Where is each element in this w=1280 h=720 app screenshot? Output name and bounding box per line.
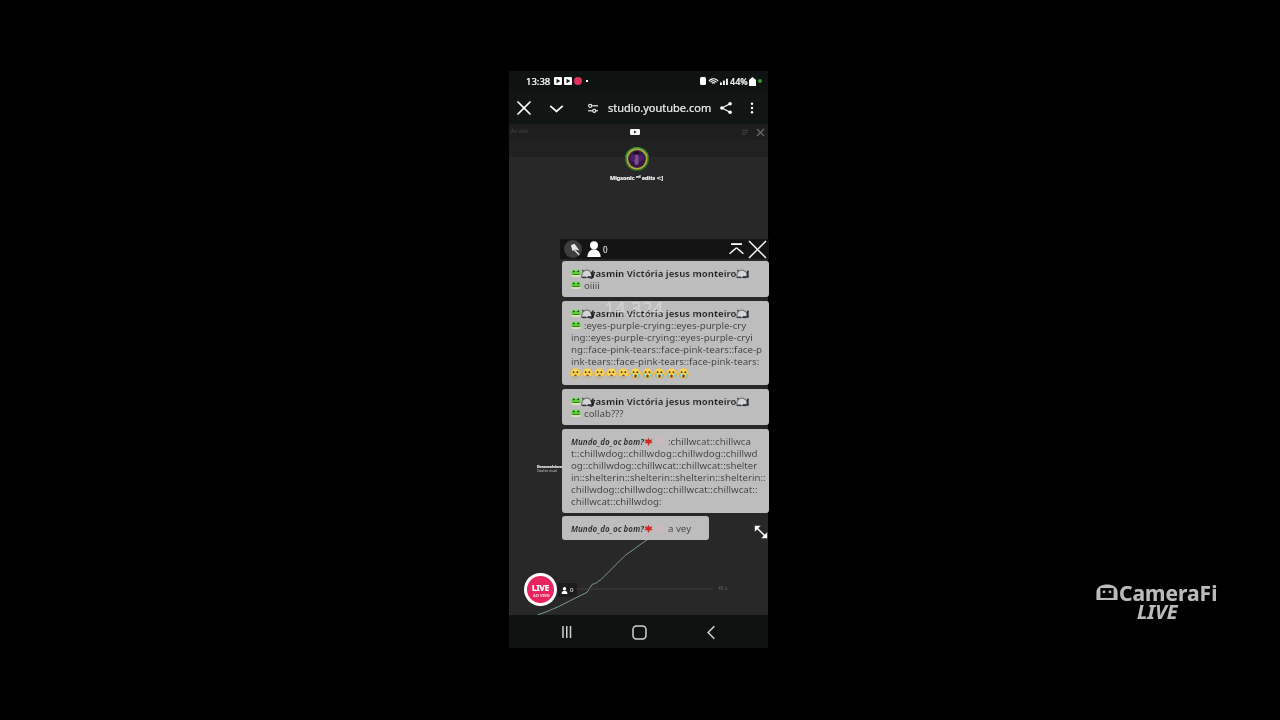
staticText: a vey [668, 522, 692, 535]
staticText: ink-tears::face-pink-tears::face-pink-te… [571, 355, 760, 367]
staticText: Migsonic ᵉᵈ edits <:] [610, 174, 664, 181]
staticText: yasmin Victória jesus monteiro [590, 395, 737, 407]
staticText: t::chillwdog::chillwdog::chillwdog::chil… [571, 447, 758, 459]
button[interactable]: Fullscreen [752, 523, 770, 541]
button[interactable]: Mundo_do_oc bom? [562, 429, 769, 513]
staticText: Mundo_do_oc bom? [571, 436, 644, 447]
staticText: 0 [570, 586, 574, 594]
staticText: Ao vivo [511, 128, 528, 135]
staticText: og::chillwdog::chillwcat::chillwcat::she… [571, 459, 758, 471]
staticText: 40 s [718, 585, 728, 592]
button[interactable]: Expand [543, 95, 569, 121]
staticText: yasmin Victória jesus monteiro [590, 307, 737, 319]
button[interactable]: yasmin Victória jesus monteiro [562, 389, 769, 425]
staticText: ng::face-pink-tears::face-pink-tears::fa… [571, 343, 763, 355]
staticText: 14.324 [604, 296, 664, 322]
staticText: collab??? [584, 407, 624, 419]
button[interactable]: Back [695, 616, 727, 648]
staticText: Total de visual [537, 469, 557, 473]
button[interactable]: Live [524, 573, 557, 606]
staticText: 0 [603, 244, 608, 255]
button[interactable]: yasmin Victória jesus monteiro [562, 301, 769, 385]
button[interactable]: Site settings [583, 98, 603, 118]
button[interactable]: Recents [550, 616, 582, 648]
staticText: LIVE [532, 582, 550, 593]
staticText: ing::eyes-purple-crying::eyes-purple-cry… [571, 331, 753, 343]
button[interactable]: Share [713, 95, 739, 121]
staticText: 13:38 [526, 75, 551, 88]
button[interactable]: Collapse [726, 239, 746, 259]
staticText: :chillwcat::chillwca [668, 435, 751, 447]
button[interactable]: Close [511, 95, 537, 121]
staticText: CameraFi [1119, 579, 1218, 608]
staticText: LIVE [1137, 598, 1178, 625]
button[interactable]: yasmin Victória jesus monteiro [562, 261, 769, 297]
staticText: yasmin Victória jesus monteiro [590, 267, 737, 279]
button[interactable]: More options [739, 95, 765, 121]
staticText: AO VIVO [533, 593, 550, 598]
staticText: in::shelterin::shelterin::shelterin::she… [571, 471, 766, 483]
staticText: chillwdog::chillwdog::chillwcat::chillwc… [571, 483, 758, 495]
button[interactable]: Pin [564, 240, 582, 258]
staticText: Mundo_do_oc bom? [571, 523, 644, 534]
button[interactable]: Mundo_do_oc bom? [571, 516, 704, 540]
staticText: 44% [730, 75, 748, 87]
button[interactable]: Home [623, 616, 655, 648]
staticText: Desenvolvimento [537, 464, 568, 469]
staticText: :eyes-purple-crying::eyes-purple-cry [584, 319, 747, 331]
staticText: studio.youtube.com [608, 100, 712, 115]
button[interactable]: Close chat [746, 239, 768, 259]
staticText: oiiii [584, 279, 600, 291]
staticText: chillwcat::chillwdog: [571, 495, 662, 507]
